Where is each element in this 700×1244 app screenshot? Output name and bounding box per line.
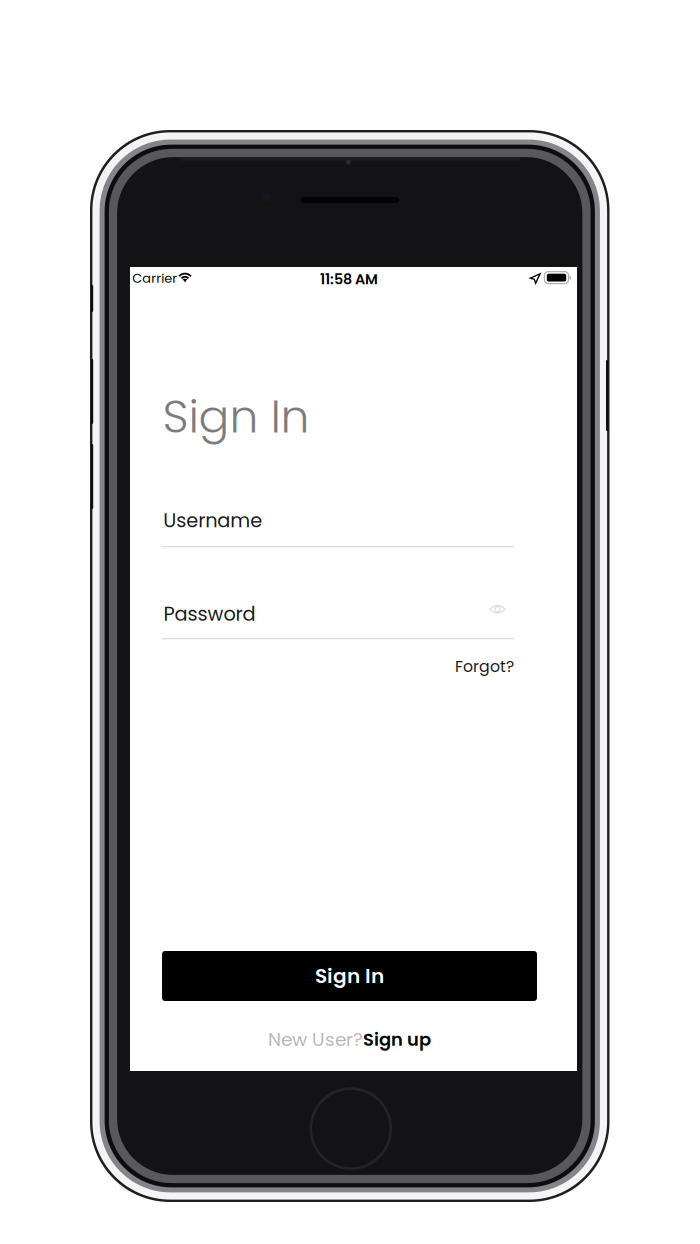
staticText: Carrier — [132, 269, 177, 287]
staticText: Sign In — [315, 962, 384, 990]
button[interactable]: Sign In — [162, 951, 537, 1001]
button[interactable]: New User? — [162, 1027, 537, 1051]
staticText: Sign up — [363, 1027, 431, 1052]
staticText: Username — [163, 507, 262, 534]
staticText: 11:58 AM — [320, 269, 378, 289]
staticText: Password — [163, 600, 255, 628]
button[interactable]: Forgot? — [162, 654, 514, 678]
staticText: Sign In — [162, 384, 309, 448]
staticText: New User? — [268, 1026, 363, 1052]
staticText: Forgot? — [455, 655, 514, 677]
